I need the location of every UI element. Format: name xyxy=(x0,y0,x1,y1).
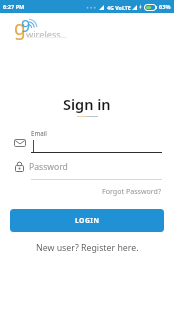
staticText: 4G VoLTE xyxy=(107,4,131,11)
button[interactable]: Password input field xyxy=(0,160,174,180)
staticText: New user? Register here. xyxy=(36,242,139,254)
staticText: 6:27 PM xyxy=(3,3,25,11)
staticText: Sign in xyxy=(63,94,111,114)
staticText: Forgot Password? xyxy=(102,186,162,196)
staticText: g xyxy=(14,15,26,41)
staticText: Email xyxy=(31,129,47,137)
staticText: 63% xyxy=(159,3,171,11)
button[interactable]: LOGIN xyxy=(10,209,164,232)
button[interactable]: Forgot Password? xyxy=(101,185,163,197)
staticText: LOGIN xyxy=(75,216,100,225)
staticText: 9 xyxy=(21,15,31,37)
staticText: wireless xyxy=(26,28,61,41)
button[interactable]: New user? Register here. xyxy=(34,241,141,255)
staticText: Password xyxy=(29,161,68,173)
button[interactable]: Email input field xyxy=(0,129,174,153)
